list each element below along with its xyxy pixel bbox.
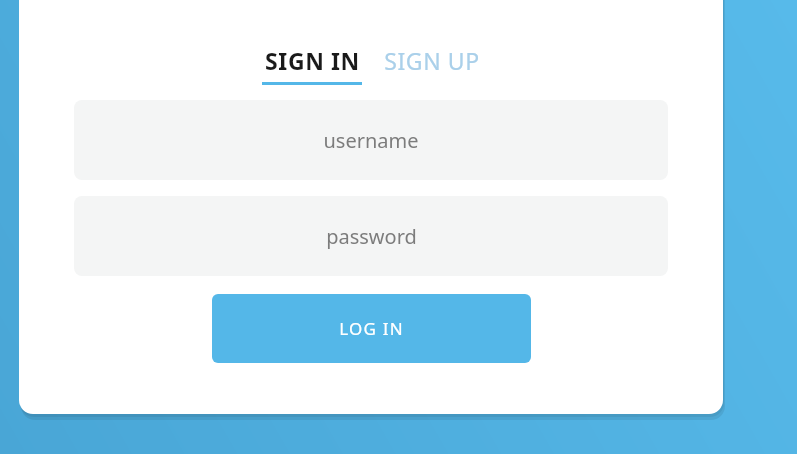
staticText: LOG IN — [339, 317, 404, 340]
button[interactable]: SIGN UP — [384, 45, 480, 76]
button[interactable]: password — [74, 196, 668, 276]
staticText: SIGN UP — [384, 45, 480, 76]
button[interactable]: SIGN IN — [262, 45, 362, 85]
button[interactable]: username — [74, 100, 668, 180]
staticText: password — [326, 223, 417, 250]
staticText: username — [323, 127, 419, 154]
staticText: SIGN IN — [265, 45, 360, 76]
button[interactable]: LOG IN — [212, 294, 531, 363]
